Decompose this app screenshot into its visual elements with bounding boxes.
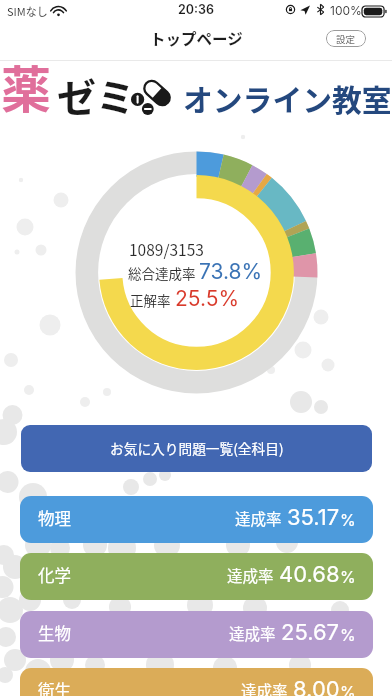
staticText: % bbox=[340, 567, 356, 586]
button[interactable]: お気に入り問題一覧(全科目) bbox=[21, 425, 372, 472]
staticText: 物理 bbox=[38, 506, 71, 530]
staticText: 35.17 bbox=[287, 504, 340, 531]
staticText: % bbox=[340, 625, 356, 644]
staticText: 25.67 bbox=[281, 619, 340, 646]
staticText: 73.8% bbox=[199, 259, 263, 284]
staticText: 達成率 bbox=[229, 622, 276, 644]
staticText: 化学 bbox=[38, 563, 71, 587]
staticText: 正解率 bbox=[130, 290, 171, 310]
staticText: 設定 bbox=[336, 32, 356, 46]
staticText: オンライン教室 bbox=[183, 76, 392, 119]
staticText: 総合達成率 bbox=[128, 263, 196, 283]
staticText: 達成率 bbox=[227, 564, 274, 586]
staticText: ゼミ bbox=[57, 67, 136, 123]
staticText: 生物 bbox=[38, 621, 71, 645]
staticText: 40.68 bbox=[279, 561, 340, 588]
staticText: お気に入り問題一覧(全科目) bbox=[110, 438, 284, 458]
staticText: 達成率 bbox=[241, 679, 288, 696]
button[interactable]: 設定 bbox=[326, 30, 366, 47]
staticText: % bbox=[340, 510, 356, 529]
staticText: 20:36 bbox=[178, 2, 214, 17]
button[interactable]: 化学 bbox=[20, 553, 373, 600]
staticText: 8.00 bbox=[293, 676, 340, 696]
staticText: SIMなし bbox=[7, 3, 48, 19]
staticText: 薬 bbox=[1, 50, 51, 122]
staticText: 100% bbox=[330, 3, 362, 18]
staticText: 達成率 bbox=[235, 507, 282, 529]
button[interactable]: 生物 bbox=[20, 611, 373, 658]
staticText: トップページ bbox=[150, 27, 243, 49]
staticText: 1089/3153 bbox=[129, 238, 204, 260]
staticText: % bbox=[340, 682, 356, 696]
button[interactable]: 物理 bbox=[20, 496, 373, 543]
staticText: 衛生 bbox=[38, 678, 71, 696]
staticText: 25.5% bbox=[175, 286, 240, 311]
button[interactable]: 衛生 bbox=[20, 668, 373, 696]
